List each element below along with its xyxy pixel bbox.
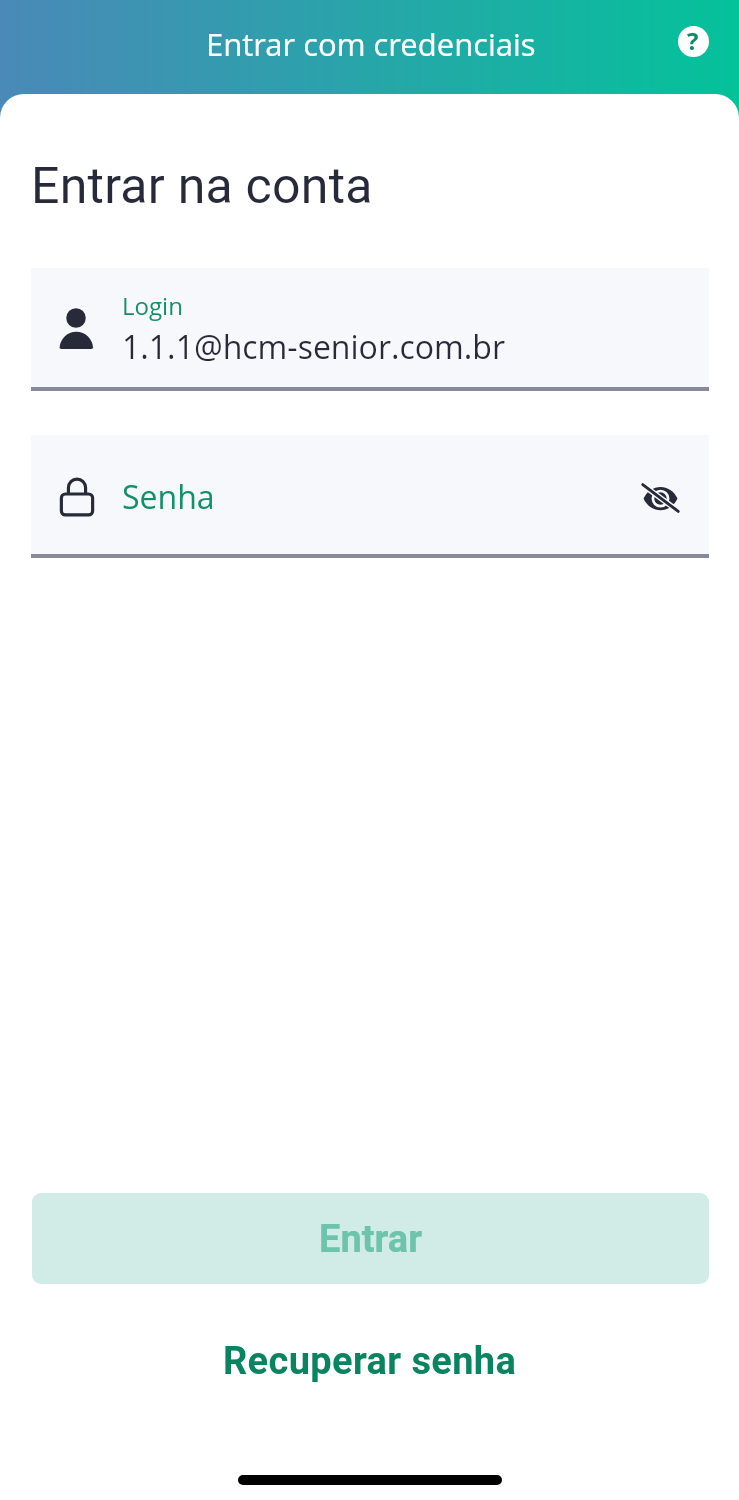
staticText: Login xyxy=(122,289,183,322)
staticText: Entrar com credenciais xyxy=(206,23,536,65)
button[interactable]: Ajuda xyxy=(670,18,716,64)
staticText: ? xyxy=(687,24,699,57)
button[interactable]: Login xyxy=(31,268,709,387)
staticText: 1.1.1@hcm-senior.com.br xyxy=(122,325,505,369)
staticText: Entrar xyxy=(319,1217,423,1262)
staticText: Recuperar senha xyxy=(223,1339,517,1384)
button[interactable]: Entrar xyxy=(32,1193,709,1284)
staticText: Entrar na conta xyxy=(31,157,373,216)
button[interactable]: Recuperar senha xyxy=(31,1318,709,1404)
button[interactable]: Senha xyxy=(31,435,709,554)
staticText: Senha xyxy=(122,475,215,519)
button[interactable]: Mostrar senha xyxy=(631,465,691,525)
